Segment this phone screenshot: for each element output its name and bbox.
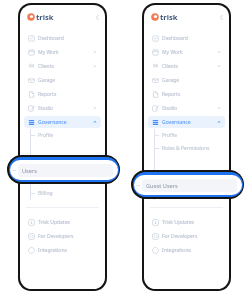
button[interactable]: Trisk Updates bbox=[148, 216, 225, 228]
button[interactable]: Clients bbox=[24, 60, 101, 72]
button[interactable]: Dashboard bbox=[148, 32, 225, 44]
staticText: trisk bbox=[36, 12, 54, 22]
staticText: Users bbox=[22, 167, 37, 175]
staticText: Studio bbox=[38, 105, 54, 112]
staticText: For Developers bbox=[162, 233, 198, 240]
staticText: Billing bbox=[162, 190, 177, 197]
button[interactable]: Integrations bbox=[24, 244, 101, 256]
button[interactable]: Reports bbox=[24, 88, 101, 100]
staticText: Reports bbox=[162, 91, 181, 98]
button[interactable]: Collapse sidebar bbox=[92, 12, 102, 22]
staticText: Profile bbox=[162, 132, 178, 139]
staticText: Trisk Updates bbox=[162, 219, 194, 226]
staticText: For Developers bbox=[38, 233, 74, 240]
button[interactable]: Profile bbox=[20, 129, 105, 142]
button[interactable]: Profile bbox=[144, 129, 229, 142]
button[interactable]: My Work bbox=[148, 46, 225, 58]
button[interactable]: For Developers bbox=[24, 230, 101, 242]
staticText: Studio bbox=[162, 105, 178, 112]
staticText: My Work bbox=[38, 49, 59, 56]
button[interactable]: Garage bbox=[24, 74, 101, 86]
staticText: Clients bbox=[162, 63, 178, 70]
button[interactable]: Clients bbox=[148, 60, 225, 72]
button[interactable]: Billing bbox=[144, 187, 229, 200]
button[interactable]: Studio bbox=[24, 102, 101, 114]
staticText: trisk bbox=[160, 12, 178, 22]
staticText: Garage bbox=[162, 77, 180, 84]
button[interactable]: Roles & Permissions bbox=[144, 142, 229, 155]
button[interactable]: Guest Users menu item bbox=[131, 170, 244, 199]
staticText: Clients bbox=[38, 63, 54, 70]
button[interactable]: Dashboard bbox=[24, 32, 101, 44]
staticText: Trisk Updates bbox=[38, 219, 70, 226]
button[interactable]: Reports bbox=[148, 88, 225, 100]
staticText: Integrations bbox=[162, 247, 191, 254]
button[interactable]: Studio bbox=[148, 102, 225, 114]
button[interactable]: Billing bbox=[20, 187, 105, 200]
staticText: Governance bbox=[162, 119, 191, 126]
button[interactable]: Integrations bbox=[148, 244, 225, 256]
staticText: Communications bbox=[162, 177, 202, 184]
staticText: Roles & Permissions bbox=[162, 145, 210, 152]
staticText: Reports bbox=[38, 91, 57, 98]
staticText: Governance bbox=[38, 119, 67, 126]
button[interactable]: Communications bbox=[20, 174, 105, 187]
button[interactable]: Communications bbox=[144, 174, 229, 187]
button[interactable]: For Developers bbox=[148, 230, 225, 242]
staticText: Billing bbox=[38, 190, 53, 197]
button[interactable]: Garage bbox=[148, 74, 225, 86]
button[interactable]: Governance bbox=[24, 116, 101, 128]
staticText: Guest Users bbox=[146, 182, 178, 190]
button[interactable]: Trisk Updates bbox=[24, 216, 101, 228]
button[interactable]: My Work bbox=[24, 46, 101, 58]
staticText: My Work bbox=[162, 49, 183, 56]
button[interactable]: Tag Library bbox=[20, 161, 105, 174]
staticText: Dashboard bbox=[162, 35, 188, 42]
button[interactable]: Governance bbox=[148, 116, 225, 128]
button[interactable]: Users menu item bbox=[7, 155, 120, 184]
staticText: Communications bbox=[38, 177, 78, 184]
staticText: Garage bbox=[38, 77, 56, 84]
button[interactable]: Collapse sidebar bbox=[216, 12, 226, 22]
staticText: Dashboard bbox=[38, 35, 64, 42]
staticText: Integrations bbox=[38, 247, 67, 254]
staticText: Profile bbox=[38, 132, 54, 139]
